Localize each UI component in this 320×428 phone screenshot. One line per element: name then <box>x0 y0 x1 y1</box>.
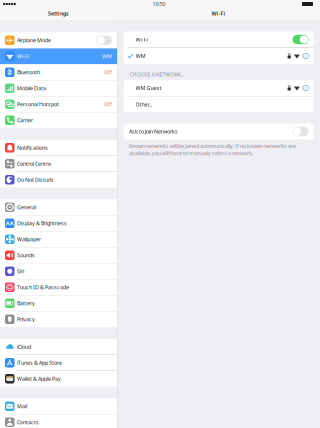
staticText: Control Centre <box>17 160 51 167</box>
staticText: Personal Hotspot <box>17 101 59 108</box>
staticText: iTunes & App Store <box>17 359 62 366</box>
staticText: WM <box>102 53 112 60</box>
staticText: Ask to Join Networks <box>129 128 178 135</box>
button[interactable]: WM <box>123 48 313 64</box>
button[interactable]: Bluetooth <box>0 64 117 80</box>
staticText: Siri <box>17 268 24 275</box>
staticText: Notifications <box>17 144 48 151</box>
staticText: Off <box>104 101 112 108</box>
button[interactable]: Privacy <box>0 311 117 327</box>
staticText: iCloud <box>17 343 31 350</box>
staticText: Wi-Fi <box>17 53 29 60</box>
staticText: Battery <box>17 300 35 307</box>
staticText: AA <box>6 220 14 227</box>
staticText: Contacts <box>17 419 39 426</box>
button[interactable]: Wi-Fi <box>123 31 313 47</box>
button[interactable]: Other... <box>123 96 313 112</box>
staticText: Display & Brightness <box>17 220 67 227</box>
staticText: WM <box>136 52 146 60</box>
staticText: Wi-Fi <box>135 36 147 43</box>
button[interactable]: Battery <box>0 295 117 311</box>
button[interactable]: iTunes & App Store <box>0 355 117 370</box>
button[interactable]: AA <box>0 215 117 231</box>
button[interactable]: Wallet & Apple Pay <box>0 371 117 386</box>
button[interactable]: Mail <box>0 398 117 414</box>
staticText: Wi-Fi <box>211 10 225 17</box>
button[interactable]: Wi-Fi <box>0 48 117 64</box>
staticText: Mobile Data <box>17 85 46 92</box>
button[interactable]: iCloud <box>0 339 117 354</box>
button[interactable]: Notifications <box>0 140 117 155</box>
button[interactable]: Siri <box>0 263 117 279</box>
staticText: CHOOSE A NETWORK... <box>129 71 183 78</box>
staticText: Wallet & Apple Pay <box>17 375 61 382</box>
button[interactable]: Touch ID & Passcode <box>0 279 117 295</box>
staticText: Known networks will be joined automatica… <box>129 142 296 157</box>
staticText: Wallpaper <box>17 236 41 243</box>
button[interactable]: WM Guest <box>123 80 313 96</box>
staticText: 10:50 <box>152 0 165 8</box>
staticText: Off <box>104 69 112 76</box>
staticText: Carrier <box>17 117 33 124</box>
staticText: Do Not Disturb <box>17 176 53 183</box>
staticText: Mail <box>17 403 27 410</box>
staticText: Touch ID & Passcode <box>17 284 69 291</box>
button[interactable]: Wallpaper <box>0 231 117 247</box>
button[interactable]: Control Centre <box>0 156 117 171</box>
staticText: Other... <box>135 101 151 108</box>
staticText: General <box>17 204 36 211</box>
button[interactable]: Mobile Data <box>0 80 117 96</box>
staticText: WM Guest <box>135 84 161 92</box>
staticText: Airplane Mode <box>17 37 51 44</box>
staticText: Sounds <box>17 252 35 259</box>
staticText: Settings <box>48 10 69 17</box>
button[interactable]: Do Not Disturb <box>0 172 117 187</box>
button[interactable]: Sounds <box>0 247 117 263</box>
button[interactable]: Airplane Mode <box>0 32 117 48</box>
staticText: i <box>305 52 306 60</box>
button[interactable]: Carrier <box>0 112 117 128</box>
staticText: i <box>305 84 306 92</box>
button[interactable]: Contacts <box>0 414 117 428</box>
staticText: Privacy <box>17 316 35 323</box>
button[interactable]: Ask to Join Networks <box>123 123 313 139</box>
button[interactable]: Personal Hotspot <box>0 96 117 112</box>
staticText: Bluetooth <box>17 69 40 76</box>
button[interactable]: General <box>0 199 117 215</box>
